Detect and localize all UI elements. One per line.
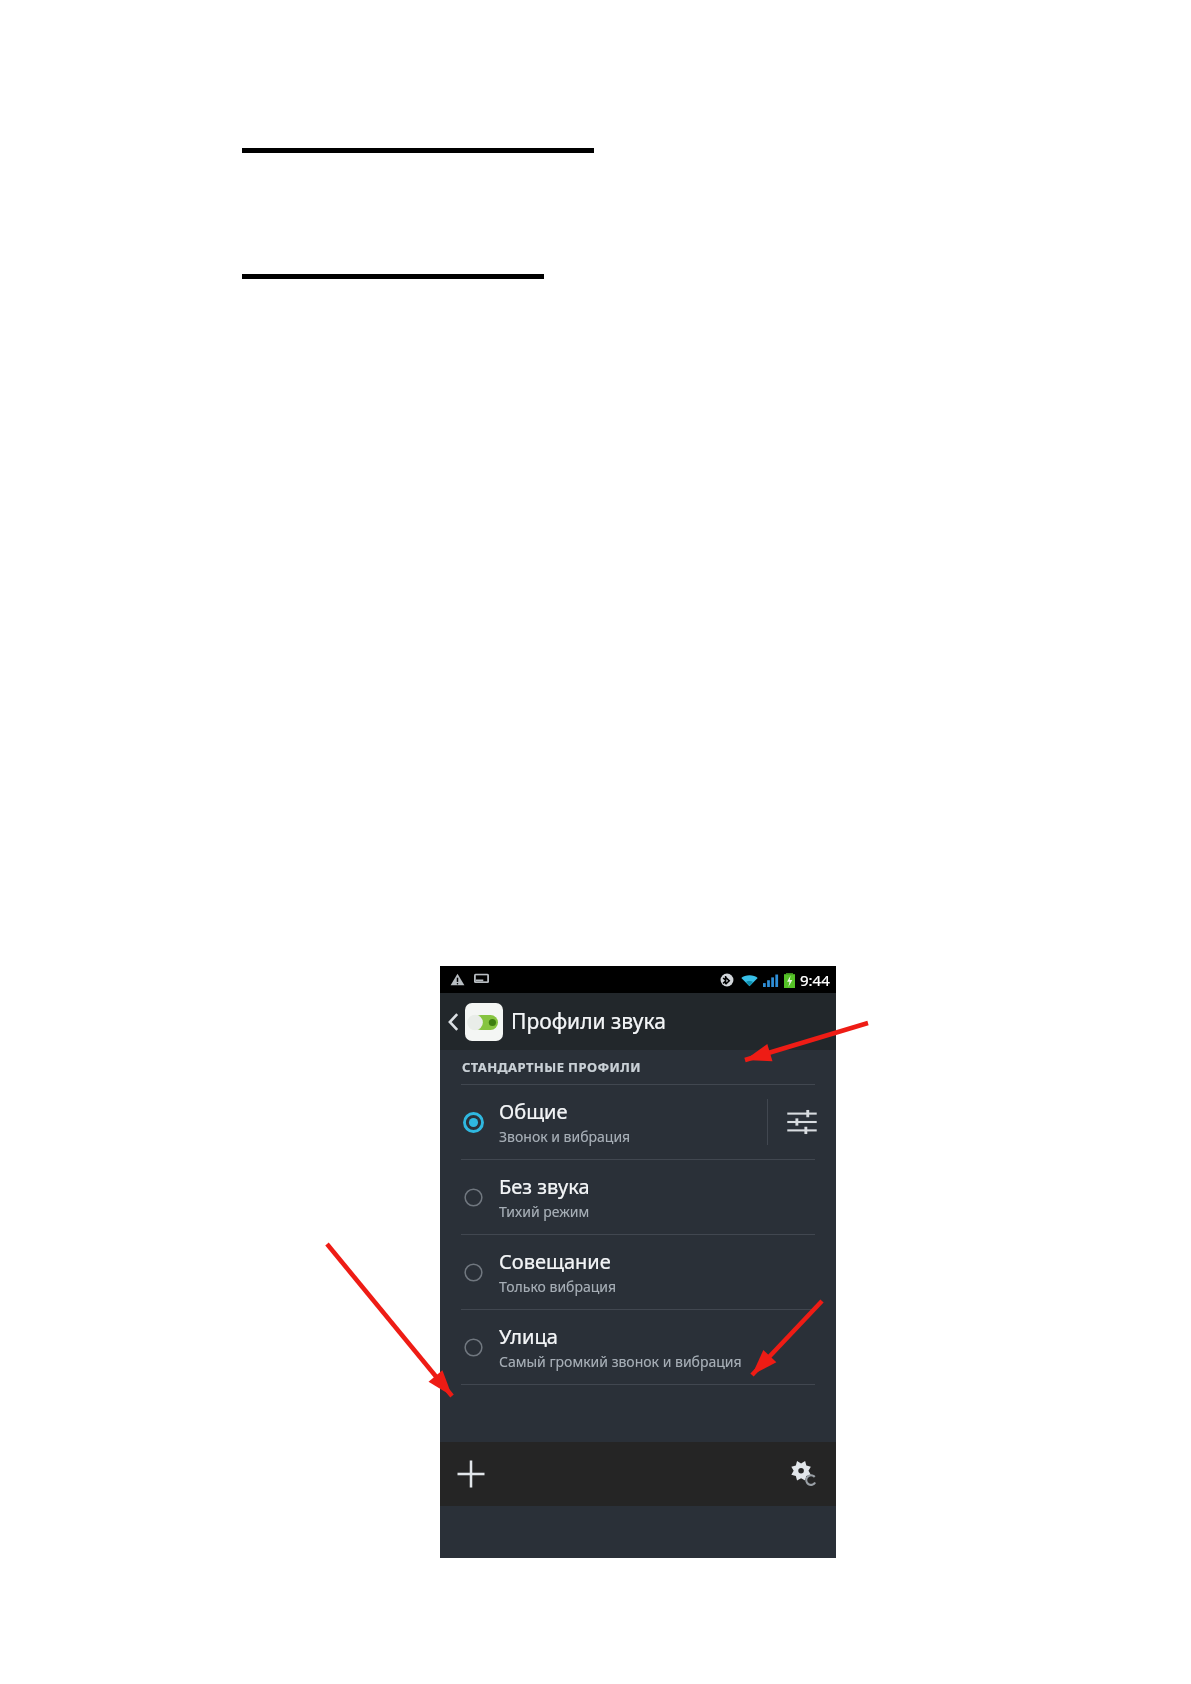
staticText: Улица bbox=[499, 1323, 558, 1350]
button[interactable]: Add profile bbox=[440, 1442, 502, 1506]
button[interactable]: Select Без звука bbox=[464, 1188, 483, 1207]
button[interactable]: Back bbox=[440, 993, 836, 1050]
staticText: Без звука bbox=[499, 1173, 590, 1200]
staticText: Только вибрация bbox=[499, 1277, 617, 1296]
staticText: Совещание bbox=[499, 1248, 611, 1275]
button[interactable]: Profile settings bbox=[768, 1085, 836, 1159]
staticText: Профили звука bbox=[511, 1007, 666, 1036]
button[interactable]: Select Улица bbox=[464, 1338, 483, 1357]
staticText: 9:44 bbox=[800, 970, 830, 990]
button[interactable]: Select Общие bbox=[464, 1113, 483, 1132]
button[interactable]: Select Без звука bbox=[440, 1160, 836, 1234]
button[interactable]: Settings bbox=[770, 1442, 836, 1506]
button[interactable]: Select Улица bbox=[440, 1310, 836, 1384]
button[interactable]: Select Общие bbox=[440, 1085, 836, 1159]
staticText: Самый громкий звонок и вибрация bbox=[499, 1352, 742, 1371]
button[interactable]: Select Совещание bbox=[440, 1235, 836, 1309]
staticText: Общие bbox=[499, 1098, 568, 1125]
staticText: Звонок и вибрация bbox=[499, 1127, 631, 1146]
staticText: СТАНДАРТНЫЕ ПРОФИЛИ bbox=[462, 1058, 641, 1076]
other: Back bbox=[446, 1009, 462, 1035]
button[interactable]: Select Совещание bbox=[464, 1263, 483, 1282]
staticText: Тихий режим bbox=[499, 1202, 590, 1221]
